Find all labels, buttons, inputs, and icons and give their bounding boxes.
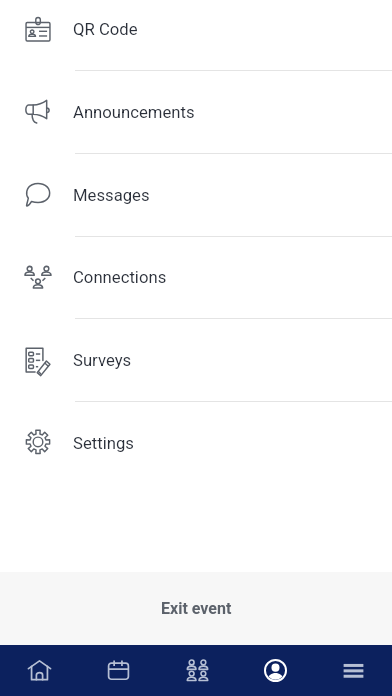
button[interactable]: Attendees [158, 645, 236, 696]
button[interactable]: Surveys [0, 319, 392, 402]
button[interactable]: Settings [0, 402, 392, 485]
staticText: Announcements [73, 103, 195, 123]
button[interactable]: Connections [0, 236, 392, 319]
button[interactable]: Profile [236, 645, 314, 696]
staticText: Settings [73, 434, 134, 454]
staticText: QR Code [73, 20, 138, 40]
staticText: Exit event [161, 599, 232, 618]
button[interactable]: Home [0, 645, 79, 696]
button[interactable]: Messages [0, 154, 392, 237]
staticText: Connections [73, 268, 167, 288]
button[interactable]: Menu [314, 645, 392, 696]
button[interactable]: Exit event [0, 572, 392, 645]
button[interactable]: Schedule [79, 645, 158, 696]
staticText: Messages [73, 186, 150, 206]
button[interactable]: QR Code [0, 0, 392, 71]
button[interactable]: Announcements [0, 71, 392, 154]
staticText: Surveys [73, 351, 132, 371]
